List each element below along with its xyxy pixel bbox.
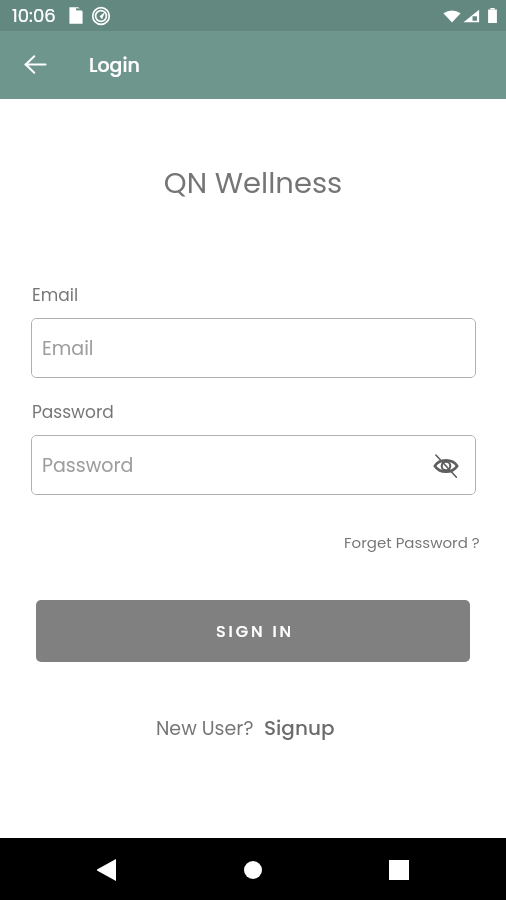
- staticText: QN Wellness: [0, 163, 506, 204]
- button[interactable]: Forget Password ?: [344, 532, 480, 553]
- button[interactable]: Back: [23, 52, 48, 77]
- button[interactable]: Back: [80, 844, 132, 896]
- staticText: SIGN IN: [216, 620, 295, 642]
- button[interactable]: Show password: [433, 453, 459, 479]
- staticText: Email: [32, 283, 79, 307]
- button[interactable]: SIGN IN: [36, 600, 470, 662]
- button[interactable]: Email: [31, 318, 476, 378]
- staticText: Password: [32, 400, 114, 424]
- button[interactable]: Home: [227, 844, 279, 896]
- button[interactable]: Password: [31, 435, 476, 495]
- staticText: New User?: [156, 715, 254, 742]
- staticText: Login: [89, 52, 140, 79]
- staticText: Email: [42, 335, 94, 362]
- staticText: 10:06: [12, 3, 56, 28]
- button[interactable]: Signup: [264, 714, 335, 742]
- button[interactable]: Recent apps: [373, 844, 425, 896]
- staticText: Password: [42, 452, 134, 479]
